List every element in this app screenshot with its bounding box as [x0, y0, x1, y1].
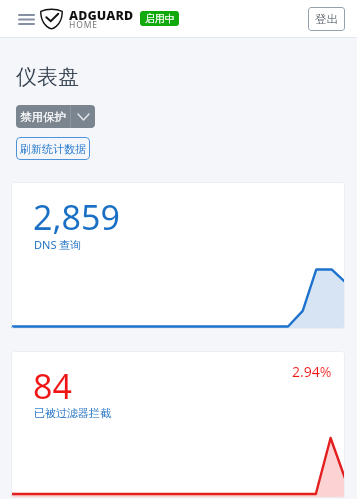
staticText: 登出 [315, 12, 338, 26]
button[interactable]: Menu [10, 0, 42, 38]
staticText: 启用中 [145, 12, 175, 25]
button[interactable]: 登出 [308, 7, 345, 31]
staticText: HOME [69, 19, 98, 31]
staticText: 已被过滤器拦截 [34, 406, 111, 420]
staticText: 仪表盘 [16, 64, 79, 90]
staticText: DNS 查询 [34, 237, 82, 252]
staticText: 84 [33, 363, 72, 409]
staticText: 禁用保护 [20, 110, 66, 124]
button[interactable]: 刷新统计数据 [16, 137, 90, 160]
button[interactable]: 启用中 [140, 11, 179, 26]
staticText: 2.94% [292, 362, 332, 381]
staticText: 刷新统计数据 [20, 142, 86, 156]
button[interactable]: 禁用保护 [16, 105, 95, 128]
staticText: 2,859 [33, 194, 120, 240]
staticText: ADGUARD [69, 7, 134, 24]
